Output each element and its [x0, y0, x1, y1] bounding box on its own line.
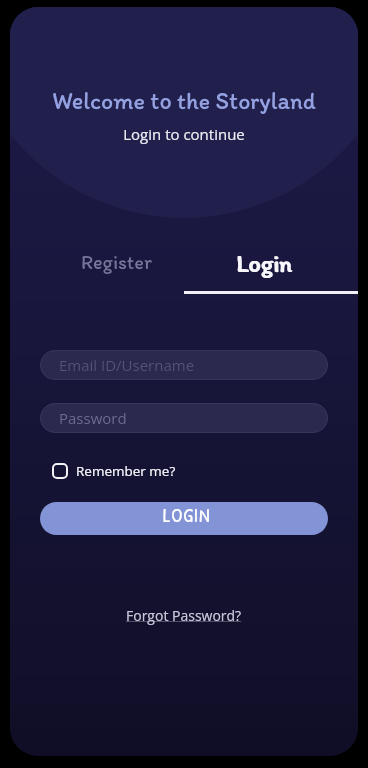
staticText: Login — [237, 249, 293, 278]
staticText: Login to continue — [10, 124, 358, 144]
button[interactable]: Email ID/Username — [40, 350, 328, 380]
staticText: Email ID/Username — [59, 355, 195, 375]
staticText: Register — [81, 250, 152, 274]
staticText: Welcome to the Storyland — [10, 86, 358, 115]
button[interactable]: Password — [40, 403, 328, 433]
button[interactable]: Login — [184, 238, 358, 288]
staticText: Password — [59, 408, 127, 428]
button[interactable]: LOGIN — [40, 502, 328, 535]
button[interactable]: Remember me? — [52, 462, 176, 480]
button[interactable]: Forgot Password? — [10, 603, 358, 627]
staticText: Login — [236, 249, 292, 278]
staticText: Remember me? — [76, 462, 176, 480]
button[interactable]: Register — [10, 237, 184, 287]
staticText: LOGIN — [163, 502, 211, 528]
staticText: Forgot Password? — [126, 606, 242, 625]
